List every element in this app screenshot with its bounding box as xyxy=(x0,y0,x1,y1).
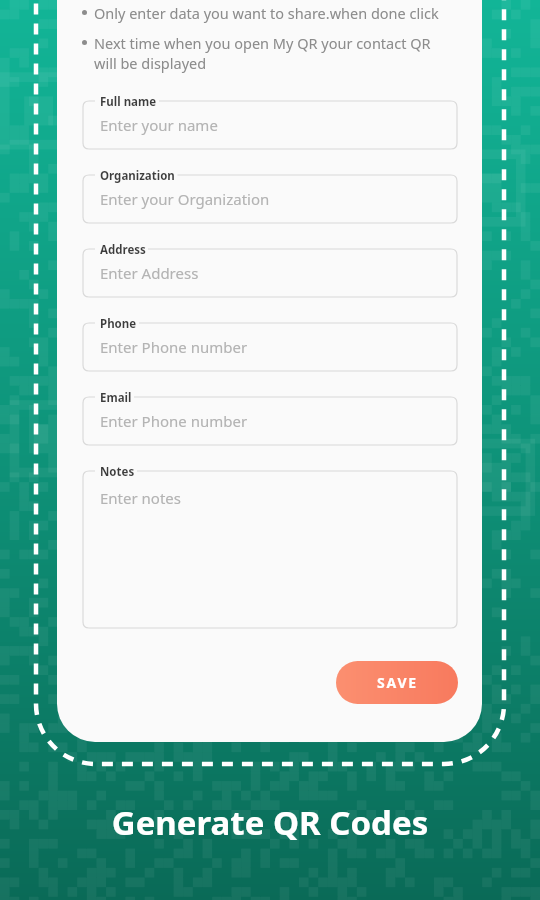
staticText: Enter Phone number xyxy=(100,411,248,431)
staticText: Full name xyxy=(100,94,157,110)
staticText: Enter Phone number xyxy=(100,337,248,357)
button[interactable]: Address xyxy=(83,249,457,297)
staticText: Only enter data you want to share.when d… xyxy=(94,3,439,23)
staticText: Notes xyxy=(100,464,135,480)
staticText: Enter your name xyxy=(100,115,218,135)
staticText: Address xyxy=(100,242,146,258)
staticText: Organization xyxy=(100,168,175,184)
staticText: Enter Address xyxy=(100,263,199,283)
button[interactable]: Organization xyxy=(83,175,457,223)
staticText: Enter notes xyxy=(100,488,181,508)
button[interactable]: Phone xyxy=(83,323,457,371)
staticText: Enter your Organization xyxy=(100,189,270,209)
button[interactable]: Full name xyxy=(83,101,457,149)
button[interactable]: Notes xyxy=(83,471,457,628)
staticText: Generate QR Codes xyxy=(0,800,540,845)
button[interactable]: Email xyxy=(83,397,457,445)
staticText: SAVE xyxy=(377,673,418,692)
staticText: Phone xyxy=(100,316,137,332)
staticText: Email xyxy=(100,390,132,406)
staticText: Next time when you open My QR your conta… xyxy=(94,33,454,74)
button[interactable]: SAVE xyxy=(336,661,458,704)
